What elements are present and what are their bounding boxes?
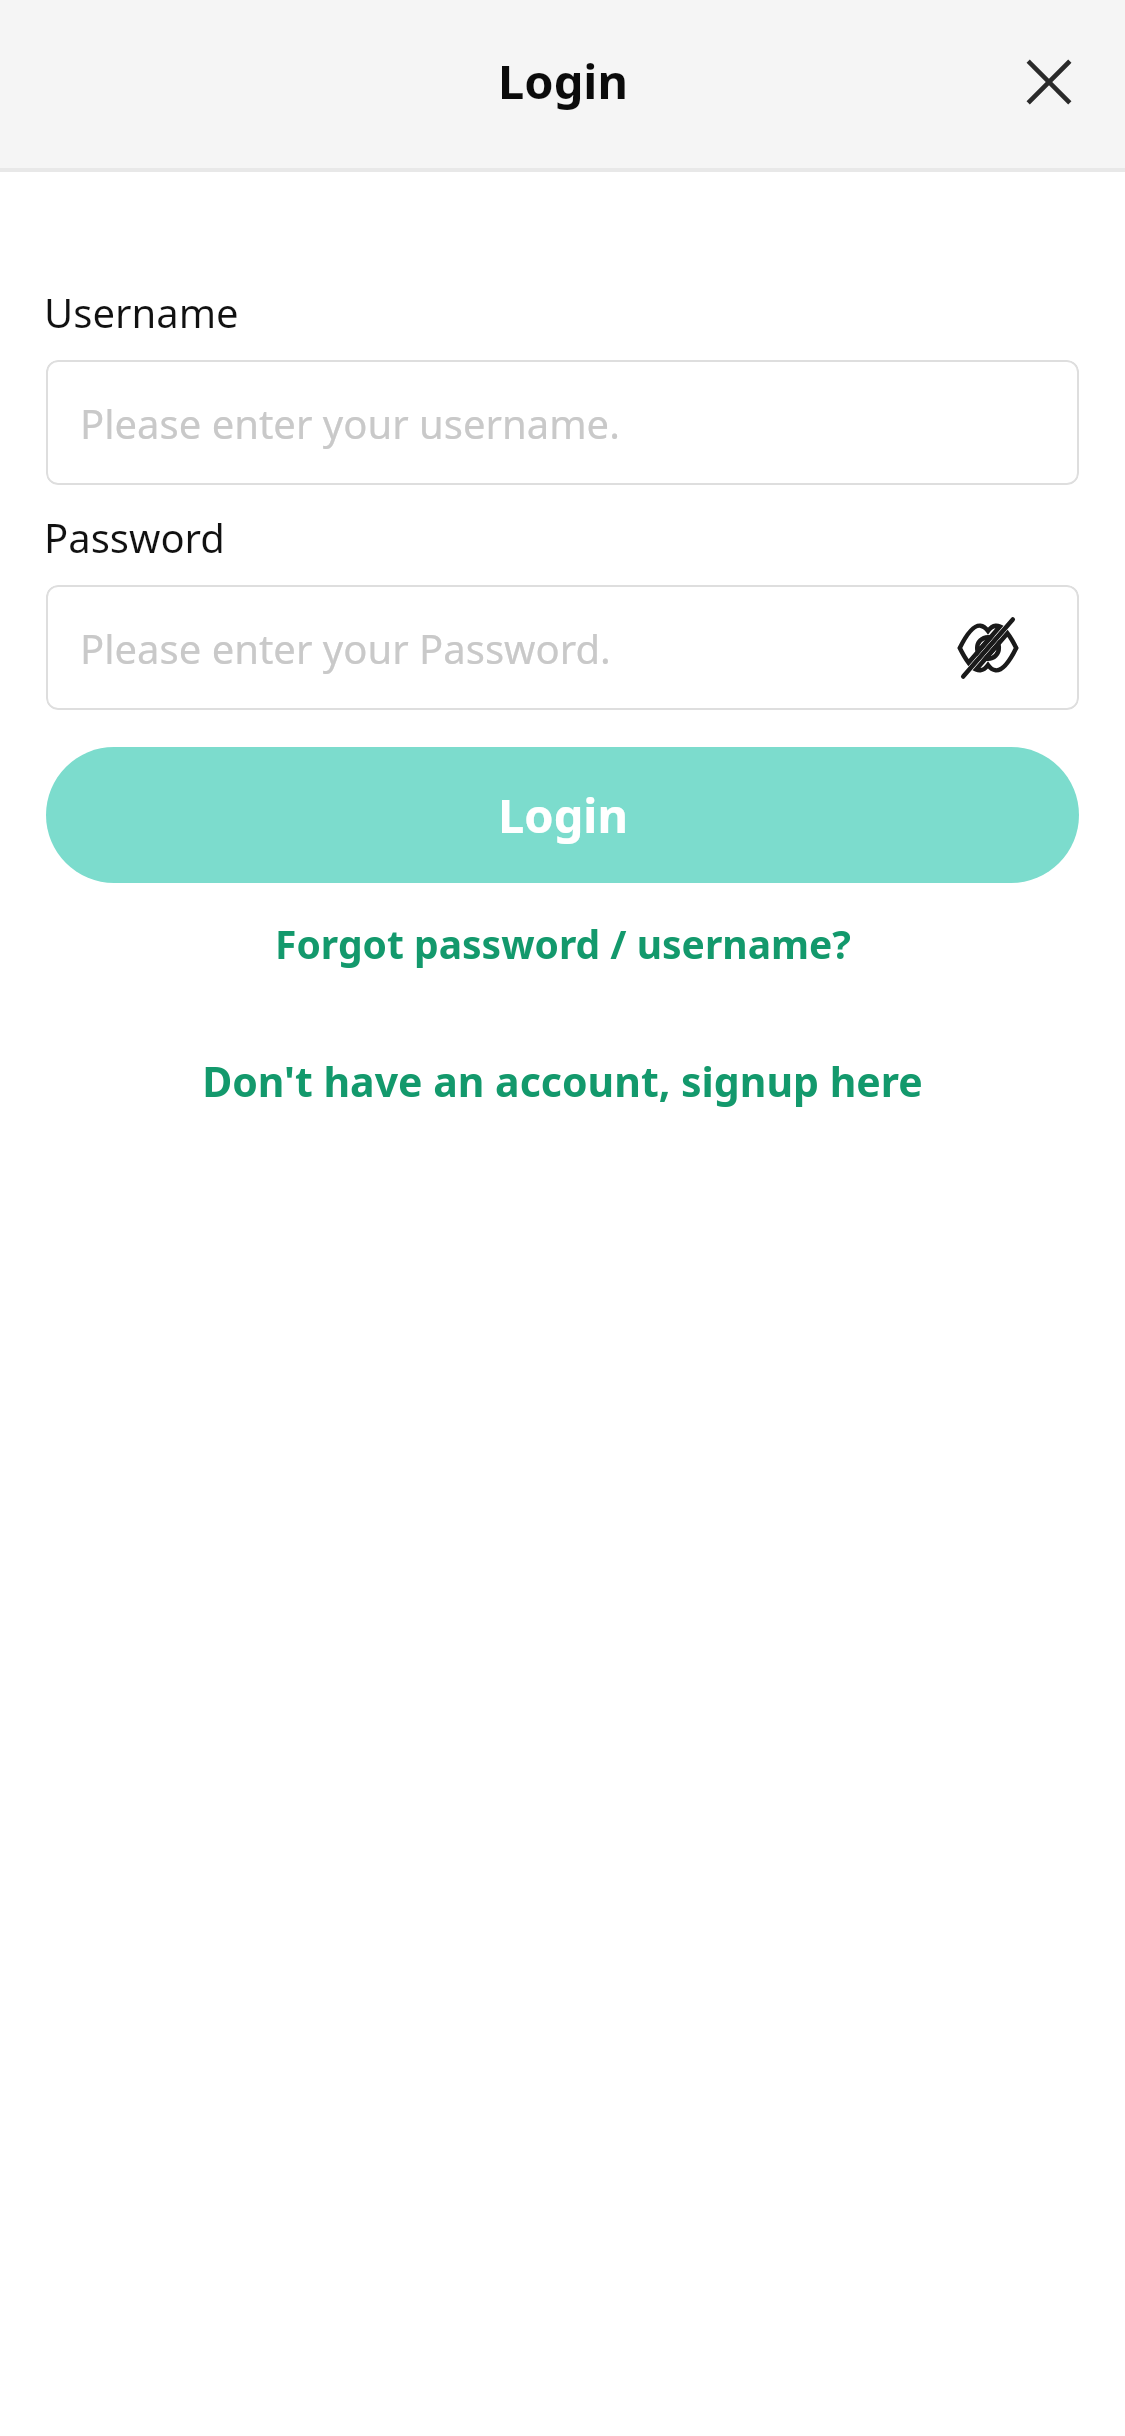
button[interactable]: Show password [949, 609, 1027, 687]
staticText: Please enter your Password. [80, 621, 611, 675]
staticText: Please enter your username. [80, 396, 620, 450]
button[interactable]: Don't have an account, signup here [0, 1043, 1125, 1119]
button[interactable]: Forgot password / username? [0, 905, 1125, 981]
staticText: Login [498, 783, 628, 847]
staticText: Password [44, 510, 225, 564]
button[interactable]: Please enter your username. [46, 360, 1079, 485]
staticText: Login [498, 49, 628, 113]
staticText: Username [44, 285, 239, 339]
button[interactable]: Please enter your Password. [46, 585, 1079, 710]
button[interactable]: Login [46, 747, 1079, 883]
staticText: Forgot password / username? [275, 917, 851, 970]
staticText: Don't have an account, signup here [202, 1053, 923, 1109]
button[interactable]: Close [1001, 34, 1097, 130]
